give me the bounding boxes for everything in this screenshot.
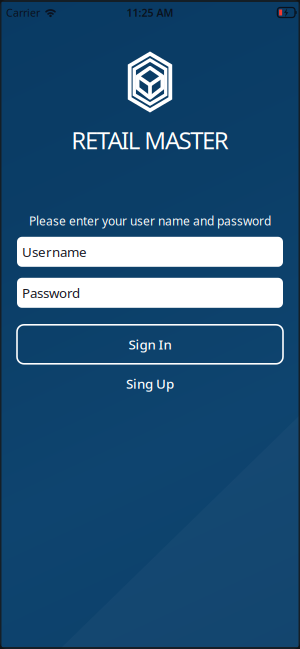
staticText: Sing Up	[126, 375, 174, 392]
staticText: 11:25 AM	[126, 5, 173, 20]
staticText: Username	[22, 243, 87, 261]
staticText: RETAIL MASTER	[71, 124, 229, 156]
staticText: Carrier	[6, 5, 40, 20]
staticText: Password	[22, 284, 80, 302]
button[interactable]: Password	[17, 278, 283, 308]
staticText: Please enter your user name and password	[29, 213, 271, 229]
button[interactable]: Sing Up	[126, 375, 174, 392]
button[interactable]: Sign In	[17, 325, 283, 364]
staticText: Sign In	[128, 335, 171, 353]
button[interactable]: Username	[17, 237, 283, 267]
